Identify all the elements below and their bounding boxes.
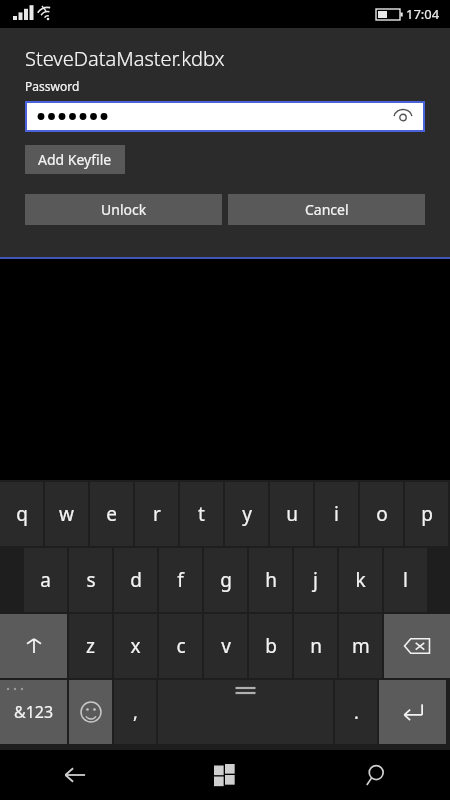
button[interactable]: r — [135, 482, 178, 546]
staticText: e — [106, 501, 117, 527]
staticText: p — [421, 501, 433, 527]
staticText: w — [59, 501, 74, 527]
staticText: n — [310, 633, 322, 659]
staticText: o — [376, 501, 388, 527]
button[interactable]: h — [249, 548, 292, 612]
button[interactable]: g — [204, 548, 247, 612]
button[interactable]: Enter — [379, 680, 446, 744]
button[interactable]: Space — [158, 680, 333, 744]
staticText: h — [265, 567, 277, 593]
button[interactable]: Start — [150, 750, 300, 800]
staticText: a — [40, 567, 51, 593]
staticText: , — [133, 700, 138, 725]
button[interactable]: Search — [300, 750, 450, 800]
button[interactable]: s — [69, 548, 112, 612]
staticText: . — [354, 700, 359, 725]
staticText: t — [198, 501, 205, 527]
staticText: d — [130, 567, 142, 593]
button[interactable]: b — [249, 614, 292, 678]
button[interactable]: Emoji — [69, 680, 112, 744]
staticText: k — [355, 567, 366, 593]
button[interactable]: w — [45, 482, 88, 546]
staticText: u — [286, 501, 298, 527]
staticText: l — [403, 567, 408, 593]
button[interactable]: p — [405, 482, 448, 546]
button[interactable]: Cancel — [228, 194, 425, 225]
button[interactable]: , — [114, 680, 156, 744]
button[interactable]: k — [339, 548, 382, 612]
staticText: g — [220, 567, 232, 593]
button[interactable]: d — [114, 548, 157, 612]
staticText: Unlock — [101, 200, 147, 219]
button[interactable]: l — [384, 548, 427, 612]
staticText: f — [177, 567, 184, 593]
button[interactable]: v — [204, 614, 247, 678]
button[interactable]: j — [294, 548, 337, 612]
staticText: SteveDataMaster.kdbx — [25, 45, 225, 72]
button[interactable]: e — [90, 482, 133, 546]
button[interactable]: a — [24, 548, 67, 612]
button[interactable]: x — [114, 614, 157, 678]
staticText: z — [86, 633, 95, 659]
staticText: q — [16, 501, 28, 527]
staticText: &123 — [14, 701, 54, 723]
button[interactable]: Add Keyfile — [25, 145, 125, 174]
button[interactable]: u — [270, 482, 313, 546]
staticText: y — [242, 501, 252, 527]
staticText: v — [221, 633, 231, 659]
button[interactable]: f — [159, 548, 202, 612]
button[interactable]: Back — [0, 750, 150, 800]
button[interactable]: y — [225, 482, 268, 546]
staticText: Password — [25, 78, 80, 94]
staticText: c — [176, 633, 186, 659]
staticText: s — [86, 567, 96, 593]
staticText: j — [313, 567, 318, 593]
staticText: b — [265, 633, 277, 659]
button[interactable] — [25, 101, 425, 132]
button[interactable]: t — [180, 482, 223, 546]
button[interactable]: o — [360, 482, 403, 546]
button[interactable]: Unlock — [25, 194, 222, 225]
button[interactable]: &123 — [0, 680, 67, 744]
button[interactable]: Shift — [0, 614, 67, 678]
button[interactable]: m — [339, 614, 382, 678]
staticText: i — [334, 501, 339, 527]
button[interactable]: n — [294, 614, 337, 678]
staticText: m — [352, 633, 370, 659]
button[interactable]: z — [69, 614, 112, 678]
button[interactable]: q — [0, 482, 43, 546]
staticText: Add Keyfile — [38, 150, 112, 169]
staticText: Cancel — [305, 200, 349, 219]
staticText: r — [153, 501, 161, 527]
button[interactable]: c — [159, 614, 202, 678]
button[interactable]: . — [335, 680, 377, 744]
button[interactable]: Backspace — [384, 614, 450, 678]
button[interactable]: i — [315, 482, 358, 546]
staticText: x — [130, 633, 141, 659]
staticText: 17:04 — [406, 5, 440, 23]
